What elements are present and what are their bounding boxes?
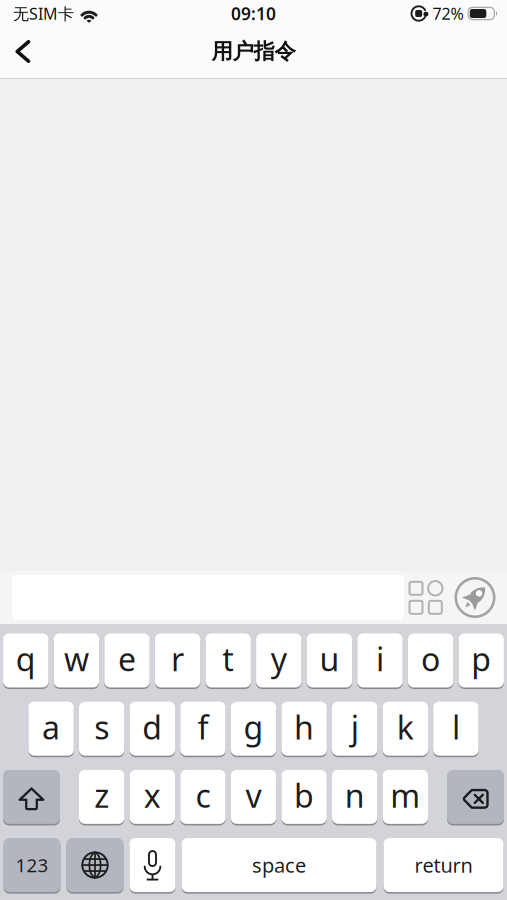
staticText: 用户指令 [211, 38, 295, 65]
button[interactable]: h [281, 702, 327, 756]
button[interactable]: Templates [404, 580, 443, 615]
button[interactable]: q [3, 633, 48, 687]
staticText: u [319, 638, 339, 680]
button[interactable]: i [357, 633, 403, 687]
staticText: v [245, 774, 261, 817]
button[interactable]: k [383, 702, 428, 756]
button[interactable]: p [458, 633, 504, 687]
button[interactable]: n [332, 770, 377, 824]
button[interactable]: Shift [3, 770, 60, 824]
button[interactable]: v [231, 770, 276, 824]
staticText: 123 [15, 853, 48, 877]
button[interactable]: Dictation [129, 838, 175, 892]
staticText: j [351, 706, 359, 748]
staticText: m [390, 774, 420, 817]
staticText: r [171, 638, 184, 680]
button[interactable]: b [281, 770, 327, 824]
staticText: o [421, 638, 440, 680]
staticText: 09:10 [231, 2, 276, 25]
button[interactable]: g [231, 702, 276, 756]
staticText: l [452, 706, 460, 748]
staticText: return [414, 852, 472, 878]
button[interactable]: Return [383, 838, 503, 892]
staticText: t [222, 638, 234, 680]
staticText: p [471, 638, 491, 680]
button[interactable]: Back [0, 26, 31, 77]
staticText: h [294, 706, 314, 748]
button[interactable]: t [205, 633, 251, 687]
staticText: n [345, 774, 365, 817]
button[interactable]: Space [181, 838, 376, 892]
button[interactable]: a [28, 702, 74, 756]
staticText: z [94, 774, 109, 817]
button[interactable]: y [256, 633, 301, 687]
staticText: w [64, 638, 89, 680]
staticText: space [252, 852, 306, 878]
staticText: b [294, 774, 314, 817]
button[interactable]: s [79, 702, 124, 756]
staticText: s [94, 706, 109, 748]
button[interactable]: m [383, 770, 428, 824]
button[interactable]: o [408, 633, 453, 687]
staticText: d [142, 706, 162, 748]
button[interactable]: Numbers [3, 838, 60, 892]
staticText: x [144, 774, 161, 817]
button[interactable]: r [155, 633, 200, 687]
button[interactable]: l [433, 702, 479, 756]
button[interactable]: c [180, 770, 226, 824]
staticText: 72% [432, 3, 463, 24]
button[interactable]: f [180, 702, 226, 756]
button[interactable]: x [130, 770, 175, 824]
staticText: f [197, 706, 208, 748]
staticText: q [16, 638, 36, 680]
staticText: c [195, 774, 210, 817]
button[interactable]: u [307, 633, 352, 687]
button[interactable]: Delete [447, 770, 504, 824]
button[interactable]: e [104, 633, 150, 687]
button[interactable]: Next keyboard [66, 838, 123, 892]
button[interactable]: w [54, 633, 99, 687]
staticText: a [42, 706, 60, 748]
button[interactable]: j [332, 702, 377, 756]
staticText: i [376, 638, 384, 680]
staticText: y [271, 638, 287, 680]
button[interactable]: z [79, 770, 124, 824]
button[interactable]: d [130, 702, 175, 756]
button[interactable]: Send [443, 576, 507, 618]
staticText: g [243, 706, 263, 748]
staticText: e [118, 638, 136, 680]
staticText: 无SIM卡 [13, 3, 74, 24]
staticText: k [397, 706, 414, 748]
